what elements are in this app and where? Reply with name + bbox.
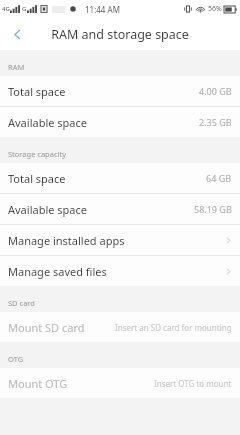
staticText: 2.35 GB — [199, 116, 232, 128]
staticText: 64 GB — [206, 172, 232, 184]
staticText: 56% — [208, 4, 222, 14]
staticText: Manage saved files — [8, 264, 107, 279]
staticText: Insert OTG to mount — [154, 378, 232, 389]
button[interactable]: Available space — [0, 194, 240, 224]
staticText: 4G — [2, 5, 10, 13]
staticText: Storage capacity — [8, 149, 67, 159]
staticText: 11:44 AM — [85, 4, 120, 15]
staticText: Total space — [8, 84, 66, 99]
staticText: 4.00 GB — [199, 85, 232, 97]
staticText: Available space — [8, 202, 87, 217]
staticText: RAM and storage space — [51, 26, 189, 43]
button[interactable]: Total space — [0, 76, 240, 106]
button[interactable]: Available space — [0, 107, 240, 137]
staticText: Manage installed apps — [8, 233, 125, 248]
button[interactable]: Back — [0, 18, 34, 50]
staticText: 58.19 GB — [194, 203, 232, 215]
staticText: SD card — [8, 298, 35, 308]
staticText: Mount SD card — [8, 320, 85, 335]
button[interactable]: Total space — [0, 163, 240, 193]
button[interactable]: Mount OTG — [0, 368, 240, 398]
button[interactable]: Manage installed apps — [0, 225, 240, 255]
staticText: OTG — [8, 354, 24, 364]
button[interactable]: Manage saved files — [0, 256, 240, 286]
staticText: G — [22, 5, 27, 13]
staticText: RAM — [8, 62, 25, 72]
staticText: Total space — [8, 171, 66, 186]
staticText: Mount OTG — [8, 376, 68, 391]
staticText: Insert an SD card for mounting — [115, 322, 232, 333]
staticText: Available space — [8, 115, 87, 130]
button[interactable]: Mount SD card — [0, 312, 240, 342]
